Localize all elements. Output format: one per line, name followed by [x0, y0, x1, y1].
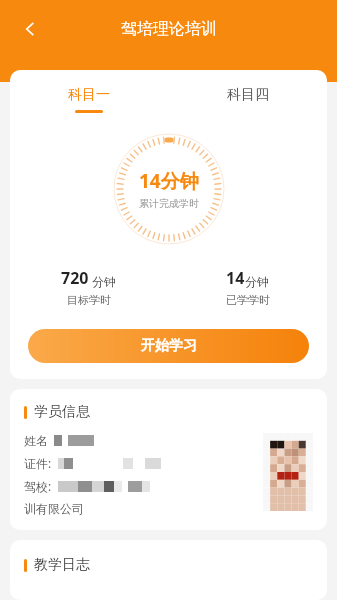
staticText: 科目四 — [227, 86, 269, 104]
button[interactable]: 科目一 — [10, 86, 168, 113]
button[interactable]: 科目四 — [168, 86, 327, 113]
staticText: 科目一 — [68, 86, 110, 104]
staticText: 证件: — [24, 455, 52, 471]
staticText: 训有限公司 — [24, 501, 84, 516]
staticText: 学员信息 — [34, 403, 90, 421]
staticText: 已学学时 — [226, 293, 270, 307]
staticText: 开始学习 — [141, 337, 197, 355]
staticText: 累计完成学时 — [139, 197, 199, 210]
staticText: 驾校: — [24, 478, 52, 494]
staticText: 驾培理论培训 — [121, 19, 217, 39]
staticText: 720 — [61, 267, 89, 289]
staticText: 分钟 — [245, 274, 269, 289]
staticText: 姓名 — [24, 433, 48, 448]
button[interactable]: 开始学习 — [28, 329, 309, 363]
button[interactable]: Back — [8, 7, 52, 51]
staticText: 目标学时 — [67, 293, 111, 307]
staticText: 分钟 — [89, 273, 117, 289]
staticText: 14 — [226, 267, 245, 289]
staticText: 教学日志 — [34, 556, 90, 574]
staticText: 14分钟 — [139, 168, 199, 194]
